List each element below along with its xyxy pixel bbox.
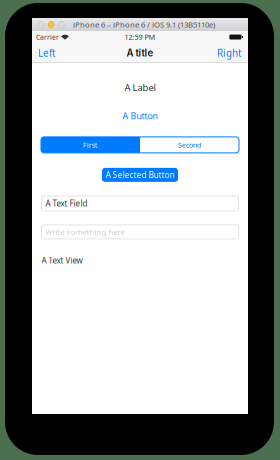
staticText: A Button <box>122 110 157 122</box>
staticText: Write something here <box>45 227 124 237</box>
staticText: Second <box>178 140 201 150</box>
staticText: A Selected Button <box>105 169 174 180</box>
staticText: Carrier <box>36 32 59 42</box>
button[interactable]: First <box>41 137 140 153</box>
staticText: iPhone 6 – iPhone 6 / iOS 9.1 (13B5110e) <box>73 19 215 30</box>
staticText: A Label <box>124 81 155 94</box>
staticText: A title <box>126 47 153 59</box>
staticText: A Text Field <box>45 198 87 209</box>
staticText: 12:59 PM <box>124 32 155 42</box>
button[interactable]: Right <box>214 42 245 64</box>
staticText: First <box>83 140 98 150</box>
button[interactable]: A Button <box>120 108 159 124</box>
button[interactable]: Left <box>35 42 59 64</box>
staticText: Right <box>217 46 242 60</box>
staticText: Left <box>38 46 56 60</box>
button[interactable]: Second <box>140 137 239 153</box>
staticText: A Text View <box>41 255 82 266</box>
button[interactable]: A Selected Button <box>102 168 178 182</box>
